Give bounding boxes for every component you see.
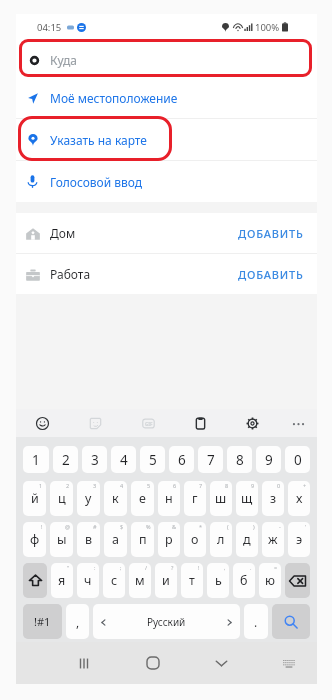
button[interactable]: н [158,481,180,516]
button[interactable]: more [288,413,308,433]
button[interactable]: д [236,522,258,557]
button[interactable]: 5 [140,446,165,473]
button[interactable]: emoji [32,413,52,433]
staticText: ю [265,572,275,589]
button[interactable]: х [288,481,310,516]
staticText: 2 [62,451,70,469]
button[interactable]: 9 [256,446,281,473]
button[interactable]: sticker [85,413,105,433]
button[interactable]: 0 [285,446,310,473]
button[interactable]: з [262,481,284,516]
button[interactable]: а [104,522,127,557]
staticText: % [146,523,151,530]
button[interactable]: е [131,481,154,516]
staticText: ? [171,564,174,571]
button[interactable]: 3 [82,446,107,473]
staticText: я [58,572,66,589]
staticText: х [296,490,303,507]
button[interactable]: ж [262,522,284,557]
button[interactable]: ы [50,522,73,557]
button[interactable]: й [23,481,46,516]
button[interactable]: б [233,563,255,598]
staticText: 9 [251,482,255,489]
button[interactable]: и [155,563,177,598]
button[interactable]: Работа [16,254,317,294]
button[interactable]: т [181,563,203,598]
button[interactable]: Home [139,649,167,677]
button[interactable]: я [51,563,73,598]
button[interactable]: э [288,522,310,557]
button[interactable]: Search [272,604,310,639]
staticText: , [76,614,80,630]
button[interactable]: ю [259,563,281,598]
staticText: ! [198,564,200,571]
button[interactable]: ь [207,563,229,598]
staticText: ; [120,564,122,571]
staticText: э [296,531,303,548]
button[interactable]: Back [207,649,235,677]
button[interactable]: 8 [227,446,252,473]
button[interactable]: Моё местоположение [16,78,317,118]
staticText: с [111,572,118,589]
button[interactable]: г [184,481,206,516]
staticText: л [217,531,225,548]
button[interactable]: Дом [16,213,317,253]
staticText: 2 [66,482,70,489]
staticText: 04:15 [37,21,62,34]
staticText: & [172,523,177,530]
button[interactable]: Русский [93,604,240,639]
staticText: - [279,523,281,530]
button[interactable]: у [77,481,100,516]
staticText: Русский [147,615,186,629]
staticText: ж [268,531,278,548]
button[interactable]: 4 [111,446,136,473]
button[interactable]: п [131,522,154,557]
staticText: г [192,490,198,507]
button[interactable]: ч [77,563,99,598]
button[interactable]: Hide keyboard [275,649,303,677]
other: Backspace [289,575,306,587]
button[interactable]: о [184,522,206,557]
button[interactable]: м [129,563,151,598]
button[interactable]: 1 [23,446,49,473]
button[interactable]: р [158,522,180,557]
button[interactable]: clipboard [190,413,210,433]
staticText: 3 [93,482,97,489]
staticText: ! [41,523,43,530]
button[interactable]: с [103,563,125,598]
button[interactable]: л [210,522,232,557]
button[interactable]: Указать на карте [16,119,317,160]
button[interactable]: . [244,604,268,639]
staticText: н [165,490,173,507]
button[interactable]: Shift [23,563,47,598]
button[interactable]: 7 [198,446,223,473]
staticText: й [31,490,39,507]
button[interactable]: ш [210,481,232,516]
button[interactable]: Recents [70,649,98,677]
staticText: Моё местоположение [50,90,178,106]
button[interactable]: Куда [20,43,313,76]
staticText: з [270,490,277,507]
staticText: 1 [32,451,40,469]
button[interactable]: в [77,522,100,557]
staticText: к [112,490,119,507]
button[interactable]: ц [50,481,73,516]
button[interactable]: 2 [53,446,78,473]
staticText: : [94,564,96,571]
staticText: в [85,531,93,548]
button[interactable]: к [104,481,127,516]
button[interactable]: Backspace [285,563,310,598]
button[interactable]: , [66,604,89,639]
staticText: ш [215,490,227,507]
staticText: ДОБАВИТЬ [238,267,304,282]
button[interactable]: Голосовой ввод [16,161,317,202]
staticText: 5 [147,482,151,489]
button[interactable]: settings [242,413,262,433]
button[interactable]: щ [236,481,258,516]
button[interactable]: gif [138,413,158,433]
staticText: и [162,572,170,589]
button[interactable]: ф [23,522,46,557]
staticText: ( [227,523,229,530]
button[interactable]: 6 [169,446,194,473]
button[interactable]: !#1 [23,604,62,639]
